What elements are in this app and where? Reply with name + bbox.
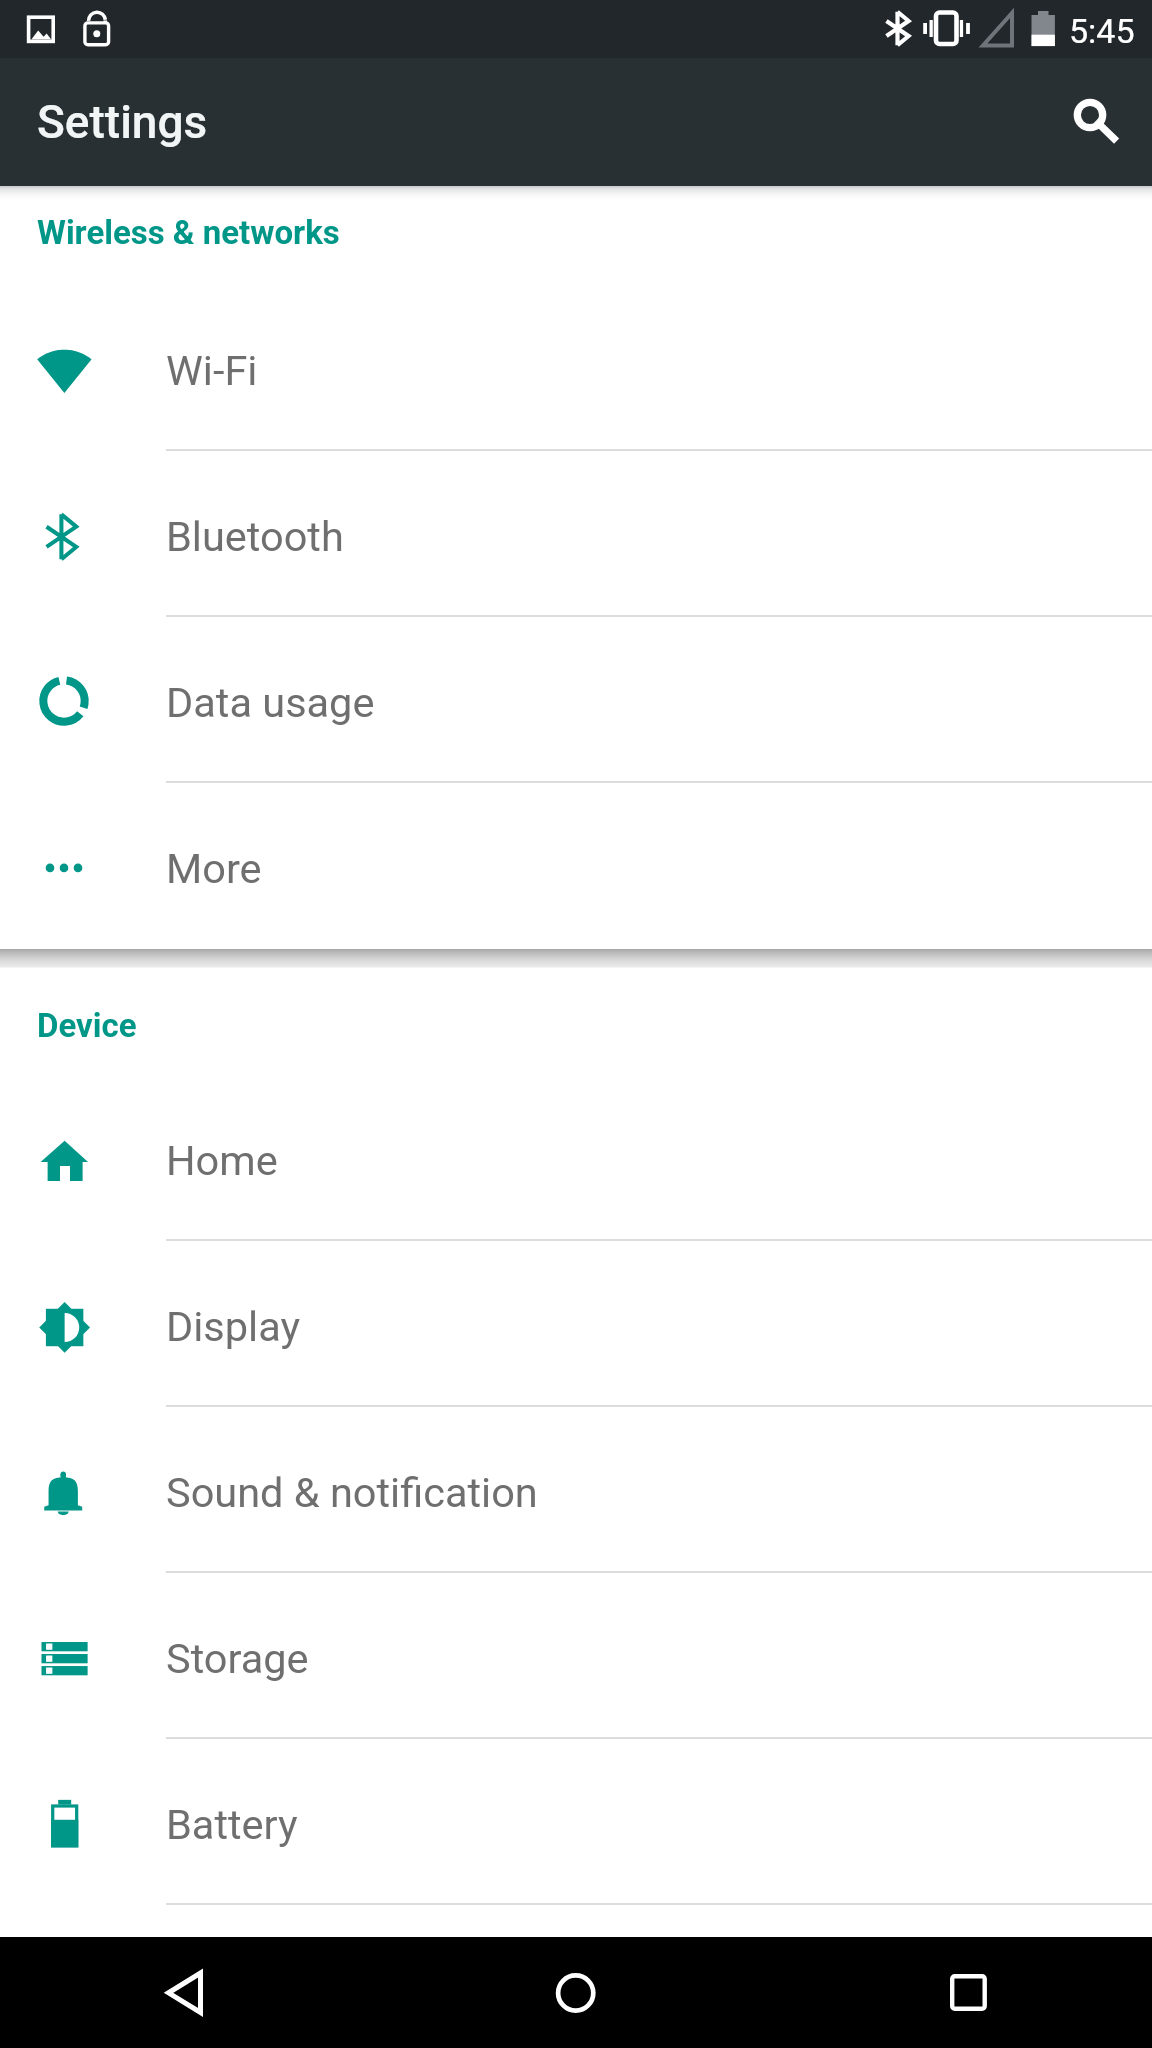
button[interactable]: Display — [0, 1241, 1152, 1407]
staticText: Sound & notification — [166, 1468, 538, 1517]
staticText: More — [166, 844, 262, 893]
staticText: Wi-Fi — [166, 346, 258, 395]
button[interactable]: Recents — [928, 1953, 1008, 2033]
button[interactable]: Bluetooth — [0, 451, 1152, 617]
button[interactable]: Storage — [0, 1573, 1152, 1739]
button[interactable]: Back — [144, 1953, 224, 2033]
staticText: Display — [166, 1302, 301, 1351]
staticText: Battery — [166, 1800, 298, 1849]
button[interactable]: Data usage — [0, 617, 1152, 783]
button[interactable]: More — [0, 783, 1152, 949]
staticText: Settings — [37, 95, 208, 149]
button[interactable]: Wi-Fi — [0, 285, 1152, 451]
staticText: Storage — [166, 1634, 309, 1683]
staticText: Device — [37, 1006, 137, 1045]
staticText: 5:45 — [1069, 11, 1135, 51]
staticText: Wireless & networks — [37, 213, 340, 252]
button[interactable]: Sound & notification — [0, 1407, 1152, 1573]
button[interactable]: Battery — [0, 1739, 1152, 1905]
staticText: Data usage — [166, 678, 375, 727]
button[interactable]: Search — [1050, 75, 1130, 155]
staticText: Home — [166, 1136, 278, 1185]
button[interactable]: Home — [536, 1953, 616, 2033]
staticText: Bluetooth — [166, 512, 344, 561]
button[interactable]: Home — [0, 1075, 1152, 1241]
